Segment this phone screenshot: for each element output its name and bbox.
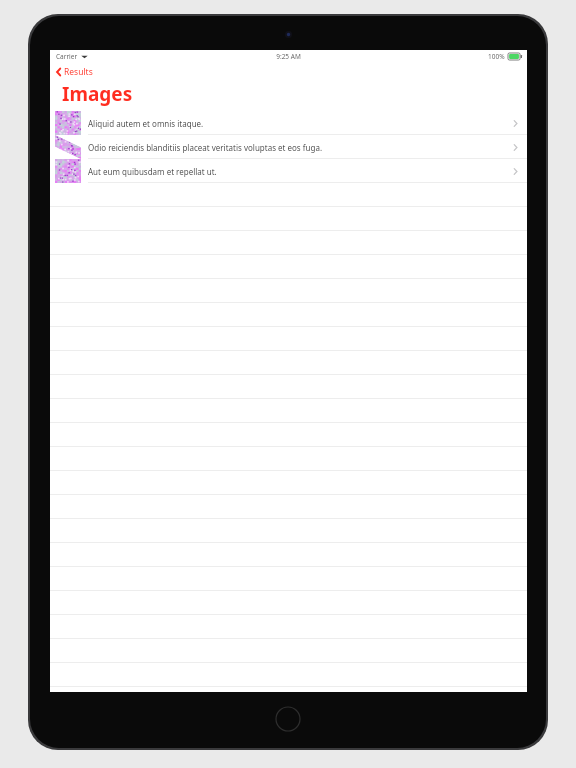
- staticText: Aut eum quibusdam et repellat ut.: [88, 166, 217, 177]
- button[interactable]: Aliquid autem et omnis itaque.: [50, 111, 527, 135]
- button[interactable]: Odio reiciendis blanditiis placeat verit…: [50, 135, 527, 159]
- button[interactable]: Results: [55, 63, 527, 80]
- staticText: Aliquid autem et omnis itaque.: [88, 118, 204, 129]
- button[interactable]: Aut eum quibusdam et repellat ut.: [50, 159, 527, 183]
- staticText: Carrier: [56, 52, 78, 61]
- staticText: Images: [62, 81, 133, 107]
- staticText: 100%: [488, 52, 505, 61]
- staticText: 9:25 AM: [276, 52, 301, 61]
- staticText: Results: [64, 66, 93, 78]
- staticText: Odio reiciendis blanditiis placeat verit…: [88, 142, 323, 153]
